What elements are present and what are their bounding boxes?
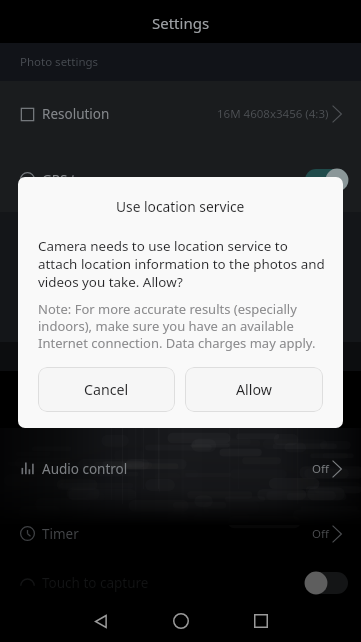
staticText: Resolution — [42, 105, 110, 123]
button[interactable]: Home — [141, 600, 221, 642]
button[interactable]: Cancel — [38, 367, 175, 412]
staticText: GPS tag — [42, 171, 92, 189]
button[interactable]: Storage — [0, 371, 361, 436]
button[interactable]: GPS tag — [0, 147, 361, 212]
button[interactable]: Recent apps — [221, 600, 301, 642]
button[interactable]: Switch on — [305, 169, 348, 191]
button[interactable]: Back — [61, 600, 141, 642]
staticText: Camera needs to use location service to … — [38, 237, 326, 291]
staticText: Note: For more accurate results (especia… — [38, 300, 329, 352]
staticText: Storage — [42, 395, 92, 413]
staticText: Timer — [42, 525, 79, 543]
staticText: 16M 4608x3456 (4:3) — [217, 106, 329, 122]
staticText: Use location service — [116, 197, 245, 216]
staticText: Cancel — [84, 380, 129, 399]
staticText: Allow — [236, 380, 272, 399]
staticText: Photo settings — [20, 54, 99, 70]
button[interactable]: Resolution — [0, 81, 361, 147]
staticText: Touch to capture — [42, 574, 149, 592]
button[interactable]: Audio control — [0, 436, 361, 501]
staticText: Off — [312, 461, 329, 477]
staticText: Off — [312, 526, 329, 542]
button[interactable]: Switch off — [305, 572, 348, 594]
staticText: Settings — [152, 13, 210, 33]
button[interactable]: Timer — [0, 501, 361, 566]
staticText: Picture quality — [42, 236, 133, 254]
button[interactable]: Allow — [185, 367, 323, 412]
staticText: Audio control — [42, 460, 128, 478]
button[interactable]: Picture quality — [0, 212, 361, 277]
staticText: Phone — [294, 396, 329, 412]
button[interactable]: Touch to capture — [0, 566, 361, 600]
button[interactable]: Anti-banding — [0, 277, 361, 342]
staticText: Anti-banding — [42, 301, 125, 319]
